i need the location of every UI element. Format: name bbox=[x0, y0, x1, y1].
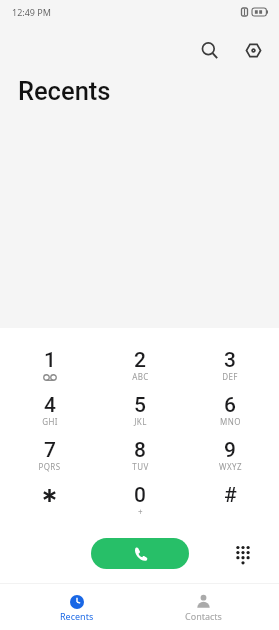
staticText: Recents bbox=[18, 76, 111, 106]
staticText: 2 bbox=[134, 348, 146, 373]
staticText: 4 bbox=[44, 393, 56, 418]
button[interactable]: 3 bbox=[185, 341, 275, 386]
button[interactable]: 8 bbox=[95, 431, 185, 476]
button[interactable]: Search bbox=[192, 33, 226, 67]
staticText: + bbox=[138, 506, 143, 517]
button[interactable]: 7 bbox=[4, 431, 95, 476]
staticText: TUV bbox=[132, 461, 149, 472]
button[interactable]: 2 bbox=[95, 341, 185, 386]
staticText: 0 bbox=[134, 483, 146, 508]
button[interactable]: 9 bbox=[185, 431, 275, 476]
button[interactable]: # bbox=[185, 476, 275, 521]
staticText: # bbox=[224, 483, 237, 508]
staticText: Contacts bbox=[185, 610, 222, 622]
staticText: GHI bbox=[42, 416, 58, 427]
button[interactable]: Settings bbox=[236, 33, 270, 67]
button[interactable]: Contacts bbox=[169, 586, 237, 626]
staticText: 7 bbox=[44, 438, 56, 463]
button[interactable] bbox=[4, 476, 95, 521]
button[interactable]: Recents bbox=[43, 586, 111, 626]
staticText: 12:49 PM bbox=[12, 6, 51, 18]
button[interactable]: 0 bbox=[95, 476, 185, 521]
staticText: DEF bbox=[222, 371, 238, 382]
button[interactable]: Dialpad bbox=[227, 539, 257, 569]
button[interactable]: 4 bbox=[4, 386, 95, 431]
button[interactable]: Call bbox=[91, 538, 189, 569]
staticText: PQRS bbox=[38, 461, 61, 472]
staticText: 8 bbox=[134, 438, 146, 463]
button[interactable]: 6 bbox=[185, 386, 275, 431]
staticText: 1 bbox=[44, 348, 56, 373]
staticText: WXYZ bbox=[219, 461, 242, 472]
staticText: Recents bbox=[60, 610, 94, 622]
staticText: 9 bbox=[224, 438, 236, 463]
button[interactable]: 1 bbox=[4, 341, 95, 386]
staticText: MNO bbox=[220, 416, 241, 427]
staticText: ABC bbox=[132, 371, 149, 382]
staticText: 6 bbox=[224, 393, 236, 418]
staticText: 3 bbox=[224, 348, 236, 373]
staticText: 5 bbox=[134, 393, 146, 418]
button[interactable]: 5 bbox=[95, 386, 185, 431]
staticText: JKL bbox=[134, 416, 147, 427]
